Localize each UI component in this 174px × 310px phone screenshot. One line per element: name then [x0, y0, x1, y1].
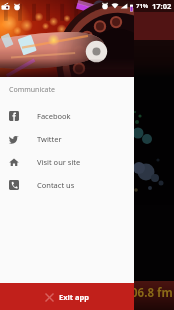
- button[interactable]: Exit app: [0, 283, 134, 310]
- staticText: Communicate: [9, 85, 55, 95]
- staticText: Visit our site: [37, 157, 81, 167]
- button[interactable]: Visit our site: [0, 150, 134, 173]
- staticText: 71%: [136, 2, 149, 10]
- staticText: 06.8 fm: [131, 285, 173, 301]
- staticText: 17:02: [152, 1, 172, 11]
- button[interactable]: Contact us: [0, 173, 134, 196]
- button[interactable]: Twitter: [0, 127, 134, 150]
- staticText: Twitter: [37, 134, 62, 144]
- staticText: Exit app: [59, 292, 89, 302]
- button[interactable]: Facebook: [0, 104, 134, 127]
- staticText: Facebook: [37, 111, 71, 121]
- staticText: Contact us: [37, 180, 75, 190]
